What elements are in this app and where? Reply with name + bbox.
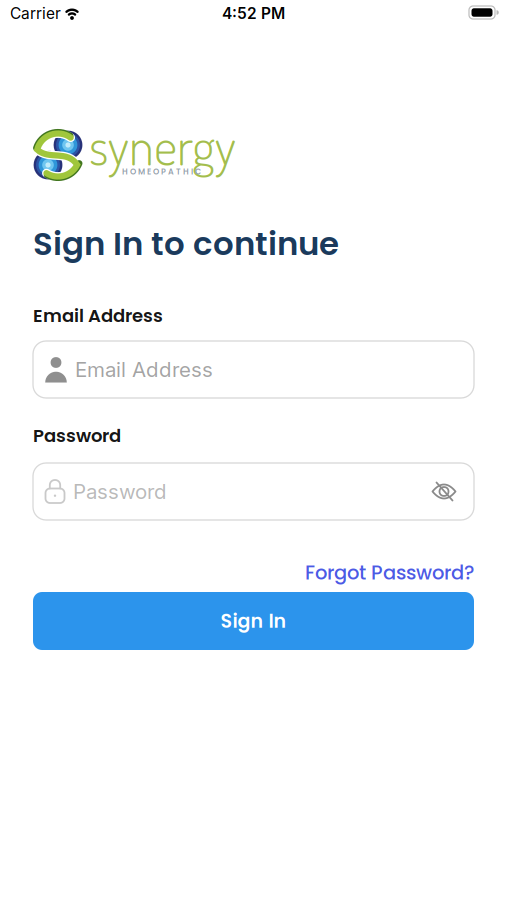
staticText: Email Address (75, 357, 213, 382)
staticText: Forgot Password? (305, 559, 474, 586)
staticText: 4:52 PM (222, 4, 285, 23)
staticText: Email Address (33, 303, 163, 328)
staticText: Password (73, 479, 167, 504)
staticText: Password (33, 423, 121, 448)
staticText: Carrier (10, 4, 61, 23)
staticText: synergy (89, 113, 236, 177)
staticText: Sign In to continue (33, 221, 339, 266)
staticText: H O M E O P A T H I C (122, 166, 201, 177)
staticText: Sign In (220, 608, 286, 634)
